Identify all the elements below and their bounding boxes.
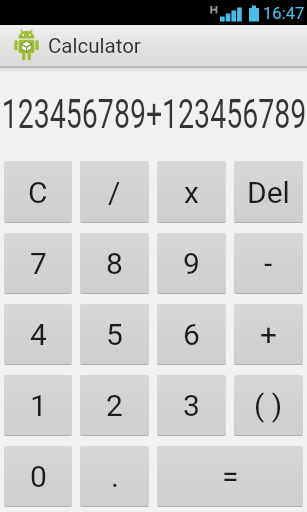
staticText: = xyxy=(222,459,239,494)
staticText: 4 xyxy=(30,317,47,352)
staticText: - xyxy=(264,246,273,281)
button[interactable]: 4 xyxy=(4,304,72,365)
button[interactable]: . xyxy=(80,446,149,507)
staticText: ( ) xyxy=(254,388,283,423)
staticText: Calculator xyxy=(48,34,141,58)
button[interactable]: Calculator xyxy=(0,25,307,66)
staticText: 6 xyxy=(183,317,200,352)
staticText: 123456789+123456789 xyxy=(0,91,307,138)
staticText: 1 xyxy=(30,388,47,423)
staticText: . xyxy=(111,459,119,494)
staticText: / xyxy=(108,175,121,210)
staticText: 9 xyxy=(183,246,200,281)
button[interactable]: Del xyxy=(234,161,303,223)
button[interactable]: + xyxy=(234,304,303,365)
button[interactable]: C xyxy=(4,161,72,223)
button[interactable]: - xyxy=(234,233,303,294)
button[interactable]: 7 xyxy=(4,233,72,294)
staticText: C xyxy=(28,175,48,210)
button[interactable]: 1 xyxy=(4,375,72,436)
button[interactable]: ( ) xyxy=(234,375,303,436)
button[interactable]: 8 xyxy=(80,233,149,294)
staticText: 7 xyxy=(30,246,47,281)
button[interactable]: / xyxy=(80,161,149,223)
staticText: 8 xyxy=(106,246,123,281)
staticText: 5 xyxy=(106,317,123,352)
staticText: 16:47 xyxy=(263,4,305,23)
staticText: 0 xyxy=(30,459,47,494)
button[interactable]: 5 xyxy=(80,304,149,365)
staticText: 3 xyxy=(183,388,200,423)
staticText: x xyxy=(184,175,199,210)
button[interactable]: 0 xyxy=(4,446,72,507)
button[interactable]: 3 xyxy=(157,375,226,436)
button[interactable]: 2 xyxy=(80,375,149,436)
button[interactable]: 6 xyxy=(157,304,226,365)
button[interactable]: 9 xyxy=(157,233,226,294)
staticText: + xyxy=(260,317,278,352)
button[interactable]: = xyxy=(157,446,303,507)
button[interactable]: x xyxy=(157,161,226,223)
staticText: 2 xyxy=(106,388,123,423)
staticText: Del xyxy=(247,175,290,210)
